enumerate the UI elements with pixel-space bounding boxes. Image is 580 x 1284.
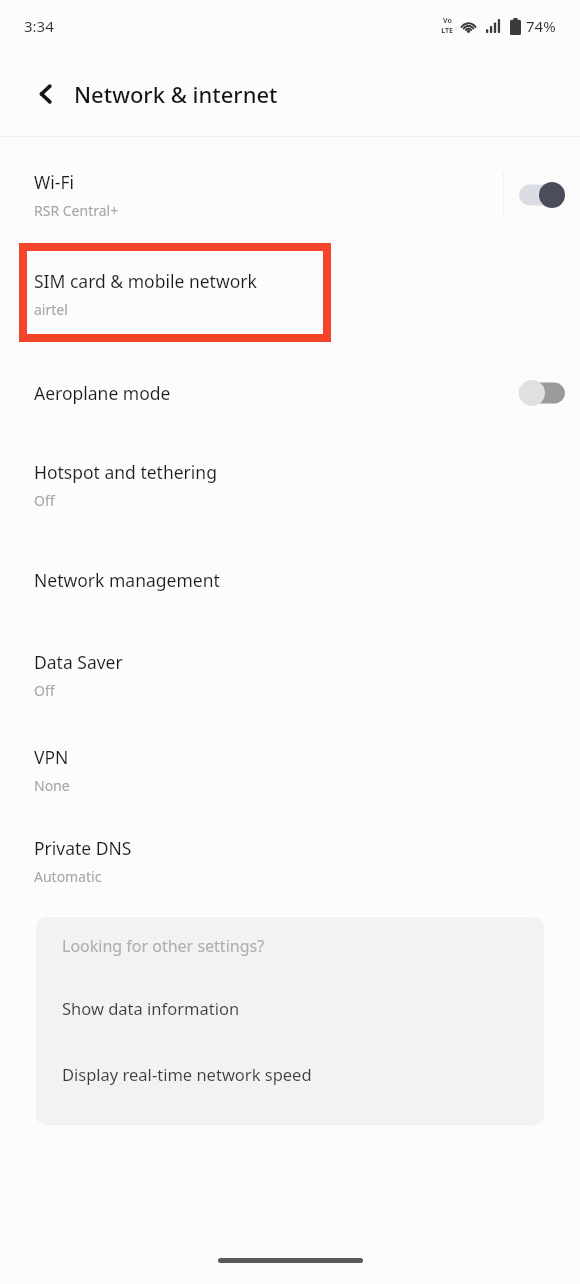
staticText: Show data information	[62, 997, 240, 1019]
staticText: Private DNS	[34, 836, 132, 860]
staticText: LTE	[441, 26, 453, 36]
button[interactable]: Show data information	[36, 975, 544, 1041]
staticText: airtel	[34, 300, 68, 319]
button[interactable]: Private DNS	[0, 817, 580, 905]
staticText: Wi-Fi	[34, 170, 75, 194]
button[interactable]: Data Saver	[0, 627, 580, 722]
button[interactable]: Display real-time network speed	[36, 1041, 544, 1107]
button[interactable]: Hotspot and tethering	[0, 437, 580, 532]
staticText: Aeroplane mode	[34, 381, 171, 405]
staticText: Off	[34, 681, 55, 700]
staticText: SIM card & mobile network	[34, 269, 257, 293]
staticText: Network & internet	[74, 79, 278, 109]
button[interactable]: Aeroplane mode off	[504, 349, 580, 437]
button[interactable]: Aeroplane mode	[0, 349, 503, 437]
staticText: Data Saver	[34, 650, 123, 674]
staticText: Vo	[443, 16, 452, 26]
staticText: VPN	[34, 745, 69, 769]
button[interactable]: Wi-Fi on	[504, 151, 580, 239]
button[interactable]: VPN	[0, 722, 580, 817]
staticText: 74%	[526, 16, 556, 36]
button[interactable]: SIM card & mobile network	[0, 239, 580, 349]
staticText: None	[34, 776, 70, 795]
staticText: Looking for other settings?	[62, 935, 265, 957]
staticText: Off	[34, 491, 55, 510]
staticText: Network management	[34, 568, 220, 592]
staticText: Display real-time network speed	[62, 1063, 312, 1085]
staticText: Hotspot and tethering	[34, 460, 217, 484]
button[interactable]: Wi-Fi	[0, 151, 503, 239]
button[interactable]: Back	[22, 70, 70, 118]
staticText: Automatic	[34, 867, 102, 886]
staticText: RSR Central+	[34, 201, 119, 220]
button[interactable]: Network management	[0, 532, 580, 627]
staticText: 3:34	[24, 16, 54, 36]
